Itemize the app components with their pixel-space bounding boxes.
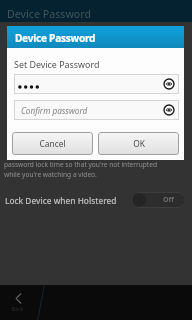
- staticText: Set Device Password: [14, 58, 100, 70]
- button[interactable]: OK: [98, 132, 179, 155]
- button[interactable]: Back: [8, 291, 28, 314]
- staticText: OK: [133, 138, 145, 149]
- button[interactable]: Lock Device when Holstered: [0, 189, 192, 211]
- staticText: Confirm password: [21, 105, 88, 116]
- staticText: Off: [163, 195, 174, 205]
- staticText: Lock Device when Holstered: [5, 195, 117, 206]
- button[interactable]: Confirm password: [14, 100, 179, 120]
- staticText: while you're watching a video.: [4, 170, 97, 179]
- staticText: Back: [12, 305, 24, 312]
- button[interactable]: Cancel: [12, 132, 93, 155]
- staticText: Device Password: [15, 31, 96, 45]
- button[interactable]: Show password: [14, 74, 179, 94]
- button[interactable]: Show password: [163, 104, 175, 116]
- staticText: Device Password: [7, 7, 92, 21]
- button[interactable]: Show password: [163, 78, 175, 90]
- staticText: password lock time so that you're not in…: [4, 160, 157, 169]
- staticText: Cancel: [39, 138, 66, 149]
